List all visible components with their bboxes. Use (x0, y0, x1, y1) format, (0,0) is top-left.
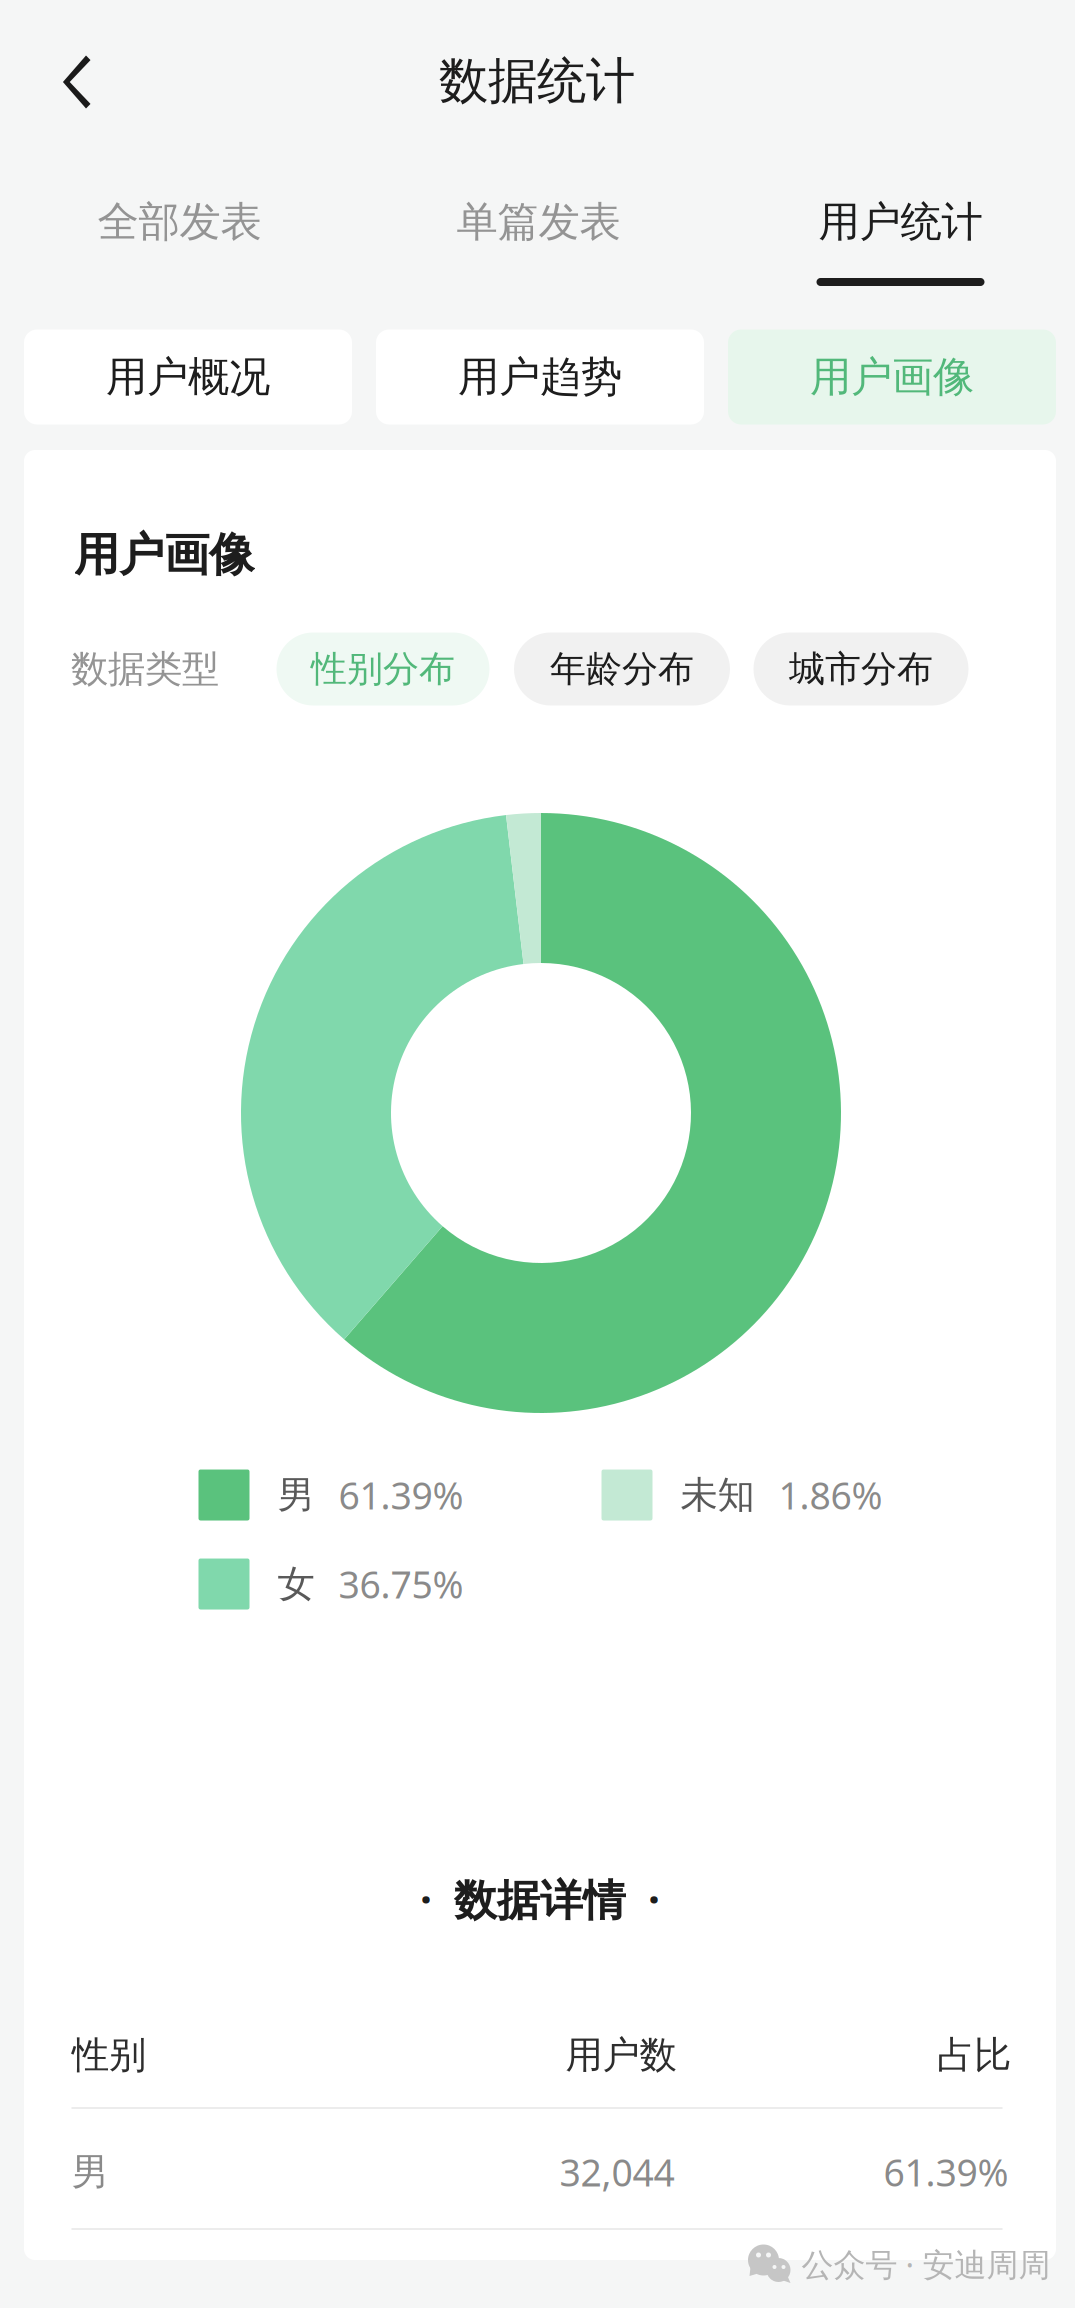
staticText: 数据类型 (71, 646, 219, 692)
button[interactable]: Back (21, 26, 131, 138)
staticText: 单篇发表 (456, 197, 620, 247)
staticText: · 数据详情 · (420, 1871, 660, 1927)
staticText: 用户画像 (74, 527, 254, 583)
staticText: 用户统计 (818, 197, 982, 247)
button[interactable]: 单篇发表 (388, 178, 688, 308)
button[interactable]: 用户画像 (728, 329, 1056, 424)
staticText: 年龄分布 (550, 647, 694, 691)
staticText: 用户趋势 (458, 352, 622, 402)
staticText: 占比 (937, 2032, 1011, 2078)
staticText: 公众号 · 安迪周周 (801, 2243, 1050, 2285)
button[interactable]: 城市分布 (753, 632, 968, 705)
staticText: 数据统计 (439, 51, 635, 111)
staticText: 36.75% (338, 1559, 463, 1609)
staticText: 用户概况 (106, 352, 270, 402)
staticText: 61.39% (338, 1470, 463, 1520)
staticText: 用户画像 (810, 352, 974, 402)
staticText: 男 (277, 1472, 314, 1518)
staticText: 61.39% (883, 2147, 1008, 2197)
staticText: 男 (71, 2149, 108, 2195)
button[interactable]: 全部发表 (29, 178, 329, 308)
button[interactable]: 性别分布 (276, 632, 489, 705)
staticText: 性别分布 (311, 647, 455, 691)
staticText: 全部发表 (97, 197, 261, 247)
staticText: 用户数 (565, 2032, 676, 2078)
staticText: 1.86% (778, 1470, 882, 1520)
button[interactable]: 用户统计 (750, 178, 1050, 308)
staticText: 女 (277, 1561, 314, 1607)
staticText: 城市分布 (789, 647, 933, 691)
button[interactable]: 用户趋势 (376, 329, 704, 424)
button[interactable]: 年龄分布 (514, 632, 730, 705)
button[interactable]: 用户概况 (24, 329, 352, 424)
staticText: 未知 (680, 1472, 754, 1518)
staticText: 性别 (72, 2032, 146, 2078)
staticText: 32,044 (559, 2147, 674, 2197)
